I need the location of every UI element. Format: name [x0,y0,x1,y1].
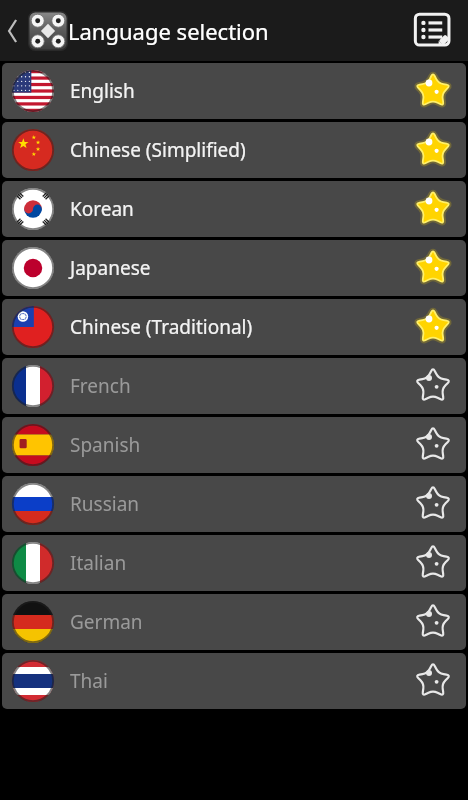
button[interactable]: Thai [2,653,466,709]
staticText: Chinese (Simplified) [70,137,246,163]
staticText: Italian [70,550,127,576]
button[interactable]: English [2,63,466,119]
button[interactable]: Spanish [2,417,466,473]
staticText: French [70,373,131,399]
staticText: English [70,78,135,104]
button[interactable]: Add favorite [408,479,458,529]
staticText: Chinese (Traditional) [70,314,253,340]
button[interactable]: German [2,594,466,650]
staticText: Japanese [70,255,151,281]
button[interactable]: Add favorite [408,656,458,706]
button[interactable]: Japanese [2,240,466,296]
button[interactable]: Add favorite [408,420,458,470]
button[interactable]: Add favorite [408,538,458,588]
staticText: German [70,609,143,635]
staticText: Spanish [70,432,141,458]
staticText: Thai [70,668,108,694]
button[interactable]: Chinese (Traditional) [2,299,466,355]
button[interactable]: Korean [2,181,466,237]
button[interactable]: French [2,358,466,414]
button[interactable]: Russian [2,476,466,532]
button[interactable]: Add favorite [408,597,458,647]
button[interactable]: Remove favorite [408,243,458,293]
button[interactable]: Remove favorite [408,184,458,234]
staticText: Korean [70,196,134,222]
button[interactable]: Italian [2,535,466,591]
staticText: Russian [70,491,140,517]
button[interactable]: Chinese (Simplified) [2,122,466,178]
button[interactable]: Back [2,11,24,51]
button[interactable]: Remove favorite [408,66,458,116]
button[interactable]: Edit language list [406,4,460,58]
button[interactable]: Remove favorite [408,302,458,352]
staticText: Language selection [68,16,269,46]
button[interactable]: Add favorite [408,361,458,411]
button[interactable]: Remove favorite [408,125,458,175]
